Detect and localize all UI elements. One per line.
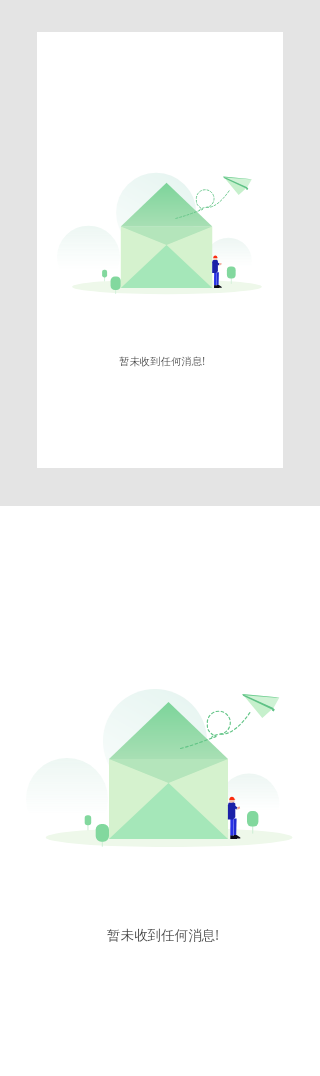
staticText: 暂未收到任何消息! — [107, 926, 219, 944]
staticText: 暂未收到任何消息! — [119, 354, 205, 368]
button[interactable]: 暂未收到任何消息! — [37, 32, 283, 468]
